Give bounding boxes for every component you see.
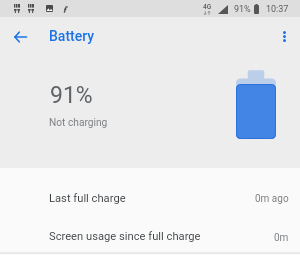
staticText: 0m ago bbox=[255, 193, 289, 205]
button[interactable]: More options bbox=[272, 25, 296, 49]
staticText: 91% bbox=[234, 4, 251, 15]
staticText: 4G bbox=[203, 3, 212, 11]
button[interactable]: Last full charge bbox=[0, 178, 300, 218]
staticText: 0m bbox=[274, 232, 289, 244]
staticText: 91% bbox=[50, 82, 93, 109]
button[interactable]: Navigate up bbox=[8, 25, 32, 49]
staticText: Battery bbox=[49, 28, 95, 44]
staticText: Not charging bbox=[49, 117, 108, 129]
staticText: Screen usage since full charge bbox=[49, 230, 201, 243]
button[interactable]: Screen usage since full charge bbox=[0, 218, 300, 255]
staticText: Last full charge bbox=[49, 192, 126, 205]
staticText: 10:37 bbox=[266, 4, 289, 15]
